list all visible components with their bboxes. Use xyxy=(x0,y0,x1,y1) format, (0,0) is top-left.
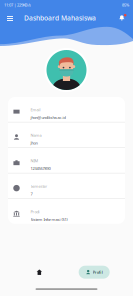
button[interactable]: Notifications xyxy=(114,10,130,26)
button[interactable]: Semester xyxy=(8,173,125,198)
button[interactable]: Home xyxy=(23,266,55,279)
staticText: 7 xyxy=(30,191,32,197)
staticText: Jhon xyxy=(30,140,37,146)
staticText: Sistem Informasi (S1) xyxy=(30,217,67,222)
button[interactable]: NIM xyxy=(8,148,125,173)
button[interactable]: Nama xyxy=(8,122,125,147)
staticText: Email xyxy=(30,107,40,112)
button[interactable]: Menu xyxy=(3,11,17,25)
button[interactable]: Prodi xyxy=(8,199,125,224)
staticText: Dashboard Mahasiswa xyxy=(24,14,96,22)
staticText: 85% xyxy=(122,2,129,8)
button[interactable]: Email xyxy=(8,97,125,122)
staticText: 1234567890 xyxy=(30,166,50,171)
button[interactable]: Profil xyxy=(79,266,110,279)
staticText: Semester xyxy=(30,183,47,189)
staticText: NIM xyxy=(30,158,38,163)
staticText: 11:07 | 229KB/s xyxy=(4,2,31,8)
staticText: Prodi xyxy=(30,209,39,214)
staticText: jhon@undiksha.ac.id xyxy=(30,115,65,120)
staticText: Nama xyxy=(30,132,41,138)
staticText: Profil xyxy=(93,269,103,275)
